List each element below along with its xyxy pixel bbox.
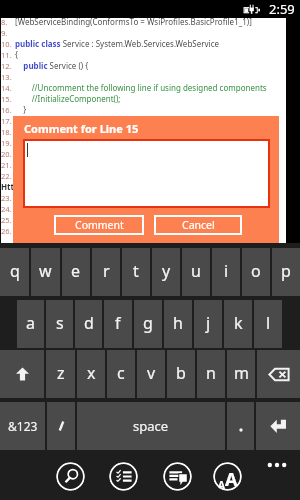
button[interactable]: r bbox=[92, 248, 120, 296]
staticText: Comment for Line 15 bbox=[24, 121, 139, 136]
staticText: 26. bbox=[1, 226, 12, 236]
button[interactable]: c bbox=[107, 350, 135, 398]
staticText: p bbox=[281, 260, 291, 282]
staticText: 2:59 bbox=[269, 0, 295, 18]
button[interactable]: b bbox=[167, 350, 195, 398]
button[interactable]: Backspace bbox=[257, 350, 300, 398]
button[interactable]: z bbox=[46, 350, 75, 398]
staticText: //Uncomment the following line if using … bbox=[15, 82, 267, 93]
button[interactable]: n bbox=[197, 350, 225, 398]
button[interactable]: a bbox=[17, 300, 44, 348]
staticText: 25. bbox=[1, 215, 12, 225]
staticText: e bbox=[71, 260, 81, 282]
button[interactable]: Shift bbox=[0, 350, 44, 398]
staticText: b bbox=[176, 362, 186, 384]
button[interactable]: y bbox=[152, 248, 180, 296]
staticText: c bbox=[117, 362, 125, 384]
button[interactable]: Period bbox=[227, 402, 254, 450]
staticText: 16. bbox=[1, 105, 12, 115]
staticText: k bbox=[234, 312, 243, 334]
staticText: [WebServiceBinding(ConformsTo = WsiProfi… bbox=[15, 16, 252, 27]
button[interactable]: Enter bbox=[256, 402, 300, 450]
staticText: Cancel bbox=[182, 218, 215, 232]
button[interactable]: f bbox=[104, 300, 132, 348]
button[interactable]: e bbox=[62, 248, 90, 296]
staticText: x bbox=[87, 362, 96, 384]
staticText: t bbox=[133, 260, 139, 282]
button[interactable]: w bbox=[31, 248, 60, 296]
staticText: 18. bbox=[1, 127, 12, 137]
staticText: 8. bbox=[1, 17, 8, 27]
staticText: s bbox=[56, 312, 64, 334]
button[interactable]: Comment text field bbox=[25, 141, 268, 206]
staticText: A bbox=[218, 478, 225, 491]
button[interactable]: Comment bbox=[163, 462, 192, 491]
staticText: 23. bbox=[1, 193, 12, 203]
button[interactable]: k bbox=[224, 300, 252, 348]
staticText: 17. bbox=[1, 116, 12, 126]
button[interactable]: v bbox=[137, 350, 165, 398]
staticText: 19. bbox=[1, 138, 12, 148]
staticText: d bbox=[84, 312, 94, 334]
staticText: h bbox=[173, 312, 183, 334]
staticText: &123 bbox=[8, 418, 38, 434]
button[interactable]: &123 bbox=[0, 402, 45, 450]
staticText: 24. bbox=[1, 204, 12, 214]
button[interactable]: m bbox=[227, 350, 255, 398]
staticText: o bbox=[251, 260, 261, 282]
button[interactable]: g bbox=[134, 300, 162, 348]
button[interactable]: l bbox=[254, 300, 282, 348]
staticText: Comment bbox=[75, 218, 124, 232]
staticText: y bbox=[162, 260, 171, 282]
staticText: j bbox=[206, 312, 211, 334]
staticText: 9. bbox=[1, 28, 8, 38]
button[interactable]: Comment bbox=[54, 215, 144, 235]
button[interactable]: s bbox=[46, 300, 73, 348]
staticText: n bbox=[206, 362, 216, 384]
staticText: m bbox=[234, 362, 249, 384]
button[interactable]: t bbox=[122, 248, 150, 296]
button[interactable]: h bbox=[164, 300, 192, 348]
staticText: f bbox=[115, 312, 121, 334]
button[interactable]: Checklist bbox=[109, 462, 138, 491]
button[interactable]: Cancel bbox=[154, 215, 242, 235]
button[interactable]: Search bbox=[56, 462, 85, 491]
staticText: u bbox=[191, 260, 201, 282]
button[interactable]: i bbox=[212, 248, 240, 296]
button[interactable]: space bbox=[77, 402, 225, 450]
button[interactable]: p bbox=[272, 248, 300, 296]
staticText: 13. bbox=[1, 72, 12, 82]
button[interactable]: o bbox=[242, 248, 270, 296]
staticText: i bbox=[224, 260, 229, 282]
staticText: 21. bbox=[1, 160, 12, 170]
button[interactable]: More options bbox=[264, 455, 290, 475]
staticText: 12. bbox=[1, 61, 12, 71]
staticText: A bbox=[225, 467, 238, 491]
staticText: a bbox=[26, 312, 35, 334]
button[interactable]: q bbox=[0, 248, 29, 296]
staticText: public Service () { bbox=[15, 60, 89, 71]
staticText: z bbox=[57, 362, 65, 384]
staticText: 11. bbox=[1, 50, 12, 60]
button[interactable]: Comma bbox=[47, 402, 75, 450]
staticText: } bbox=[15, 104, 27, 115]
staticText: l bbox=[266, 312, 271, 334]
staticText: space bbox=[133, 417, 169, 435]
staticText: q bbox=[10, 260, 20, 282]
staticText: public class Service : System.Web.Servic… bbox=[15, 38, 219, 49]
staticText: g bbox=[143, 312, 153, 334]
button[interactable]: j bbox=[194, 300, 222, 348]
button[interactable]: Font size bbox=[213, 462, 242, 491]
button[interactable]: u bbox=[182, 248, 210, 296]
staticText: 10. bbox=[1, 39, 12, 49]
staticText: Htt bbox=[1, 181, 15, 192]
staticText: { bbox=[15, 49, 19, 60]
button[interactable]: d bbox=[75, 300, 102, 348]
staticText: 20. bbox=[1, 149, 12, 159]
staticText: w bbox=[39, 260, 52, 282]
button[interactable]: x bbox=[77, 350, 105, 398]
staticText: //InitializeComponent(); bbox=[15, 93, 121, 104]
staticText: v bbox=[147, 362, 156, 384]
staticText: 14. bbox=[1, 83, 12, 93]
staticText: 15. bbox=[1, 94, 12, 104]
